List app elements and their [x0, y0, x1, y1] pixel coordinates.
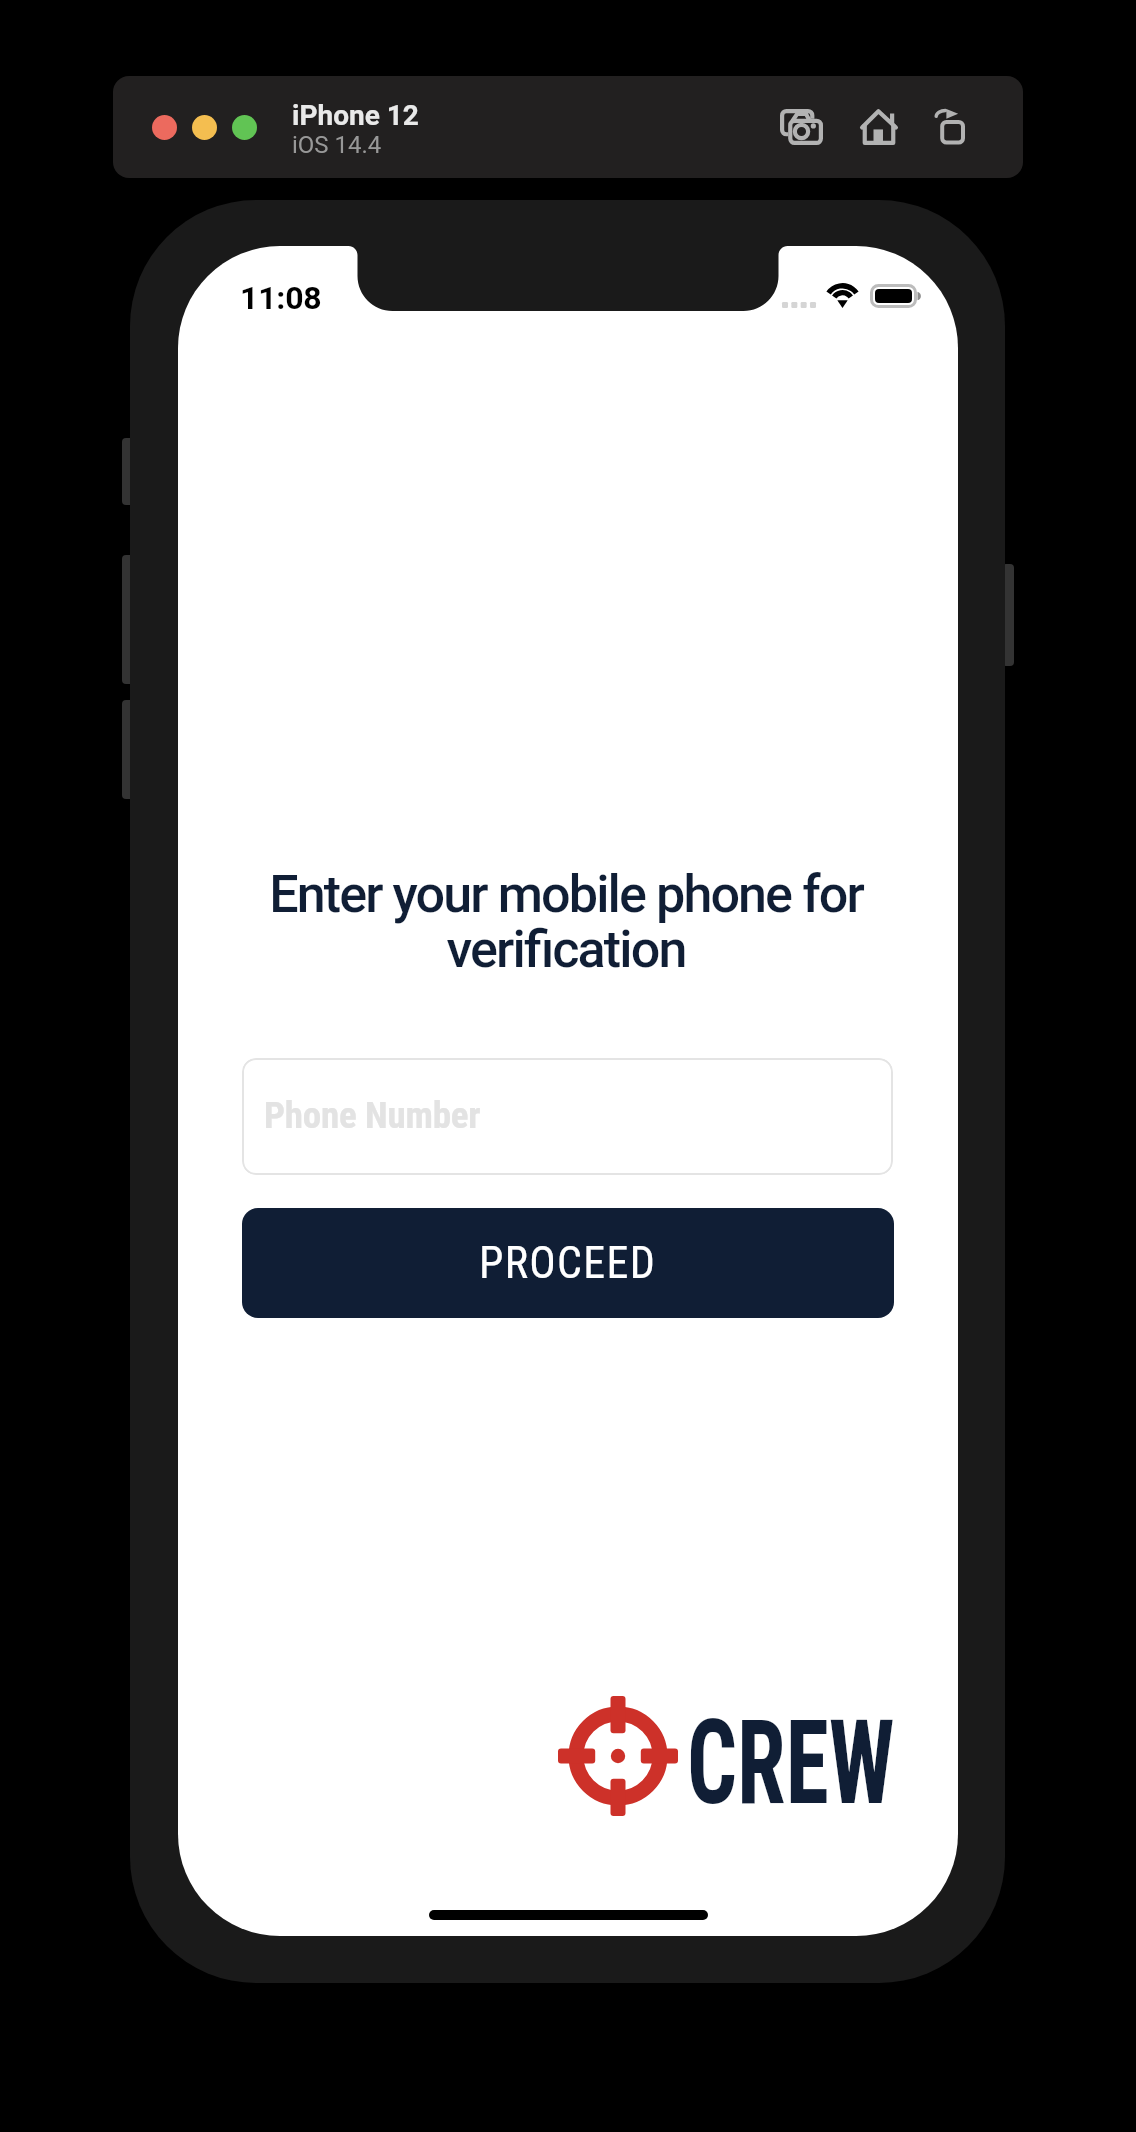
button[interactable]: Rotate	[921, 101, 977, 153]
button[interactable]: PROCEED	[242, 1208, 894, 1318]
button[interactable]: Close	[152, 115, 177, 140]
staticText: 11:08	[240, 279, 322, 317]
button[interactable]: Minimise	[192, 115, 217, 140]
staticText: iOS 14.4	[292, 131, 382, 159]
staticText: Enter your mobile phone for verification	[204, 864, 928, 980]
button[interactable]: Screenshot	[773, 101, 829, 153]
button[interactable]: Phone Number	[242, 1058, 893, 1175]
staticText: iPhone 12	[292, 99, 419, 132]
button[interactable]: Home	[851, 101, 907, 153]
button[interactable]: Zoom	[232, 115, 257, 140]
staticText: Phone Number	[264, 1094, 481, 1137]
staticText: PROCEED	[479, 1237, 657, 1289]
staticText: CREW	[687, 1694, 895, 1831]
